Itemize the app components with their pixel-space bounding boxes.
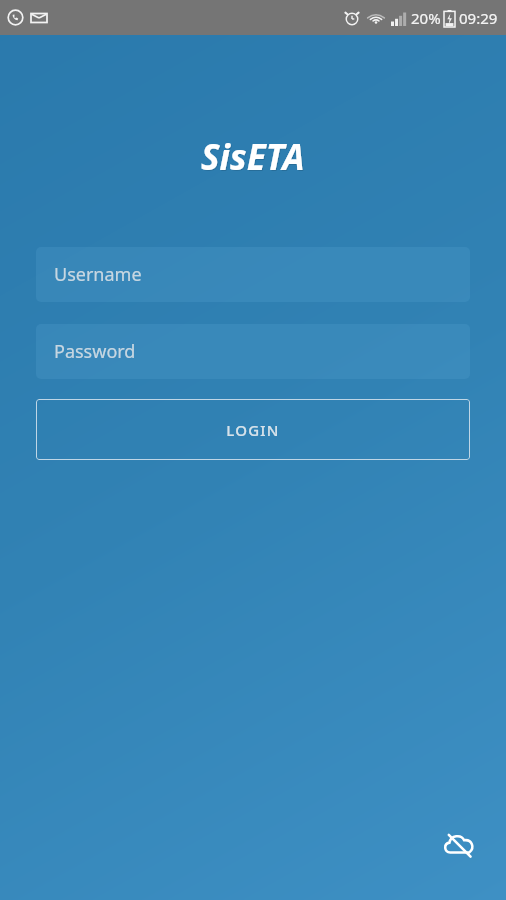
- button[interactable]: Username: [36, 247, 470, 302]
- staticText: Username: [54, 262, 142, 287]
- staticText: Password: [54, 339, 136, 364]
- staticText: 20%: [411, 8, 441, 28]
- button[interactable]: LOGIN: [36, 399, 470, 460]
- staticText: 09:29: [459, 8, 498, 28]
- staticText: LOGIN: [226, 420, 280, 440]
- staticText: SisETA: [202, 134, 306, 182]
- button[interactable]: Offline: [438, 824, 480, 866]
- button[interactable]: Password: [36, 324, 470, 379]
- staticText: SisETA: [201, 133, 305, 181]
